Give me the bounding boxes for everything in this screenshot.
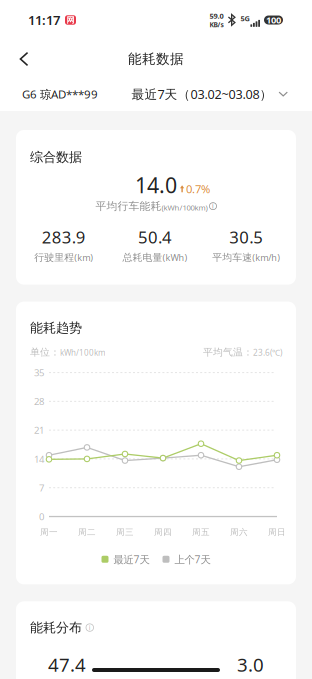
staticText: 11:17: [28, 11, 60, 29]
staticText: 7: [39, 481, 44, 494]
staticText: 100: [266, 14, 281, 26]
staticText: 14: [34, 452, 44, 465]
staticText: 47.4: [48, 652, 86, 677]
staticText: 35: [34, 366, 44, 379]
staticText: 网: [66, 15, 74, 25]
staticText: 283.9: [42, 226, 86, 248]
staticText: 0.7%: [186, 181, 210, 197]
staticText: 综合数据: [30, 149, 82, 165]
staticText: 单位：kWh/100km: [30, 346, 105, 358]
staticText: 3.0: [237, 652, 264, 677]
staticText: i: [212, 202, 214, 210]
button[interactable]: Back: [7, 44, 41, 74]
staticText: 平均行车能耗(kWh/100km): [95, 199, 207, 213]
staticText: G6 琼AD***99: [22, 86, 98, 102]
staticText: 50.4: [138, 226, 172, 248]
staticText: 能耗趋势: [30, 320, 82, 336]
staticText: 平均车速(km/h): [212, 251, 280, 264]
staticText: 能耗分布: [30, 619, 82, 636]
button[interactable]: G6 琼AD***99: [22, 80, 98, 108]
staticText: 5G: [240, 13, 249, 23]
staticText: 14.0: [135, 170, 177, 200]
staticText: 周一: [40, 527, 58, 537]
staticText: 30.5: [229, 226, 263, 248]
staticText: i: [89, 623, 91, 632]
staticText: 总耗电量(kWh): [122, 251, 187, 264]
staticText: 上个7天: [174, 552, 210, 566]
staticText: 59.0: [209, 11, 223, 21]
staticText: 周四: [154, 527, 172, 537]
staticText: 21: [34, 424, 44, 437]
staticText: 周五: [192, 527, 210, 537]
staticText: 行驶里程(km): [34, 251, 93, 264]
staticText: KB/s: [209, 20, 223, 29]
staticText: 能耗数据: [128, 50, 184, 67]
staticText: 最近7天（03.02~03.08）: [131, 85, 272, 103]
staticText: 周日: [268, 527, 286, 537]
staticText: 最近7天: [113, 552, 149, 566]
staticText: 周三: [116, 527, 134, 537]
staticText: 28: [34, 395, 44, 408]
staticText: 平均气温：23.6(℃): [203, 346, 282, 358]
button[interactable]: 最近7天（03.02~03.08）: [131, 79, 288, 109]
staticText: 0: [39, 510, 44, 523]
staticText: 周二: [78, 527, 96, 537]
staticText: 周六: [230, 527, 248, 537]
